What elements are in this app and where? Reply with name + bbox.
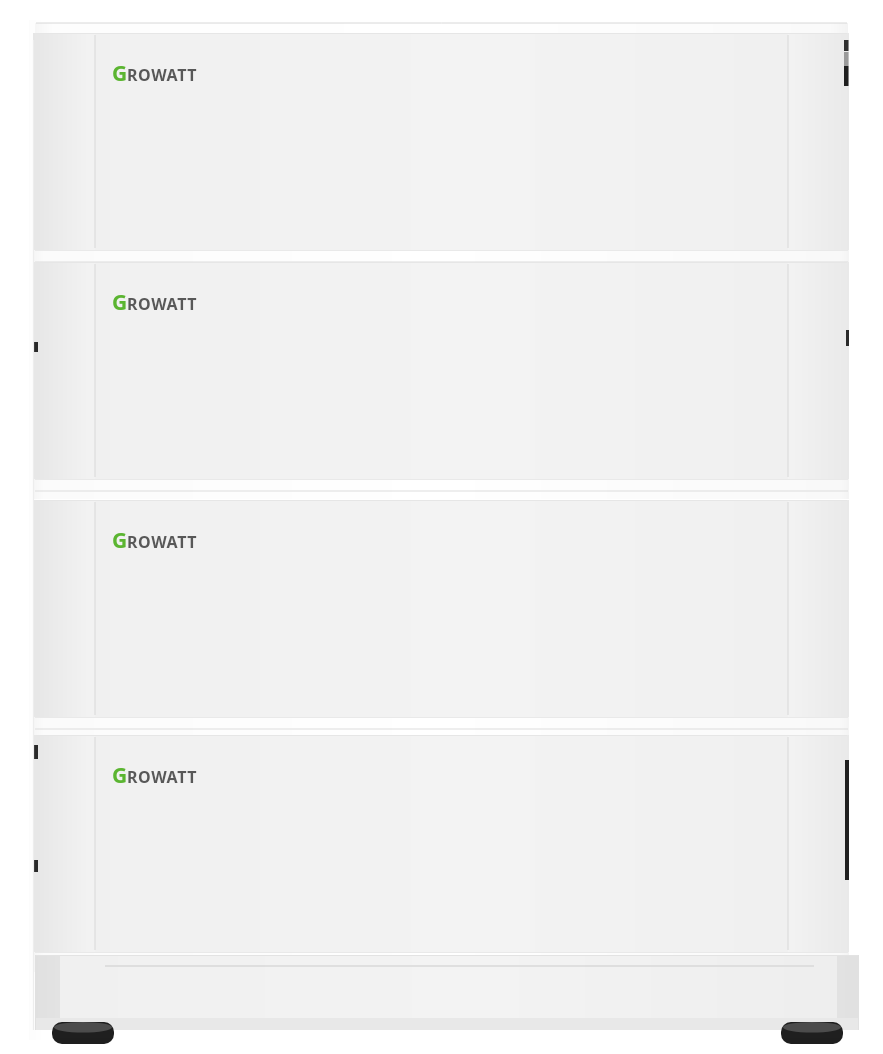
button[interactable]: Growatt stacked battery system: [0, 0, 883, 1054]
